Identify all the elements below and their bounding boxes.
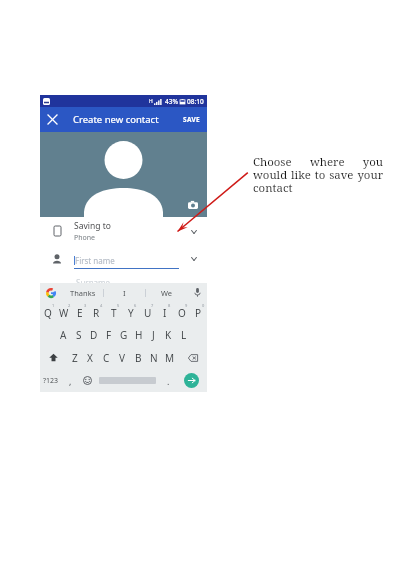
button[interactable]: W xyxy=(56,302,72,324)
button[interactable]: E xyxy=(72,302,88,324)
staticText: Choose where you would like to save your… xyxy=(253,154,383,196)
button[interactable]: Change photo xyxy=(188,200,198,209)
button[interactable]: A xyxy=(56,324,71,346)
button[interactable]: We xyxy=(146,283,187,302)
staticText: 7 xyxy=(151,303,154,308)
button[interactable]: , xyxy=(62,369,79,392)
staticText: G xyxy=(120,328,128,342)
button[interactable]: Voice input xyxy=(187,283,207,302)
staticText: R xyxy=(93,306,100,320)
button[interactable]: Saving to xyxy=(40,217,207,245)
staticText: We xyxy=(161,288,173,298)
button[interactable]: K xyxy=(161,324,176,346)
staticText: , xyxy=(69,375,72,387)
staticText: 43% xyxy=(165,97,178,106)
button[interactable]: Shift xyxy=(40,346,67,369)
button[interactable]: O xyxy=(173,302,190,324)
staticText: T xyxy=(111,306,117,320)
staticText: C xyxy=(103,351,110,365)
staticText: X xyxy=(87,351,93,365)
staticText: O xyxy=(178,306,186,320)
button[interactable]: Google search xyxy=(40,283,62,302)
button[interactable]: P xyxy=(190,302,207,324)
staticText: First name xyxy=(75,255,115,266)
staticText: D xyxy=(90,328,98,342)
staticText: Y xyxy=(128,306,134,320)
staticText: N xyxy=(150,351,158,365)
button[interactable]: M xyxy=(162,346,178,369)
staticText: 1 xyxy=(52,303,55,308)
staticText: L xyxy=(181,328,187,342)
staticText: 08:10 xyxy=(187,97,204,106)
staticText: Q xyxy=(44,306,52,320)
button[interactable]: S xyxy=(71,324,86,346)
staticText: 2 xyxy=(68,303,71,308)
staticText: H xyxy=(135,328,143,342)
staticText: Create new contact xyxy=(73,113,159,126)
button[interactable]: Emoji xyxy=(79,369,95,392)
staticText: . xyxy=(167,375,170,387)
button[interactable]: SAVE xyxy=(176,109,207,130)
staticText: S xyxy=(76,328,82,342)
button[interactable]: Expand name fields xyxy=(188,253,199,264)
staticText: W xyxy=(59,306,69,320)
staticText: U xyxy=(144,306,152,320)
button[interactable]: Y xyxy=(122,302,139,324)
button[interactable]: H xyxy=(131,324,146,346)
staticText: A xyxy=(60,328,67,342)
button[interactable]: I xyxy=(104,283,145,302)
button[interactable]: R xyxy=(88,302,105,324)
staticText: 8 xyxy=(168,303,171,308)
staticText: Saving to xyxy=(74,220,111,232)
button[interactable]: T xyxy=(105,302,122,324)
button[interactable]: J xyxy=(146,324,161,346)
button[interactable]: Space xyxy=(99,369,156,392)
button[interactable]: Q xyxy=(40,302,56,324)
staticText: SAVE xyxy=(183,115,200,124)
staticText: 4 xyxy=(100,303,103,308)
staticText: H xyxy=(149,98,153,105)
button[interactable]: Change account xyxy=(188,226,199,237)
staticText: 5 xyxy=(117,303,120,308)
button[interactable]: U xyxy=(139,302,156,324)
staticText: E xyxy=(77,306,83,320)
staticText: J xyxy=(152,328,155,342)
staticText: V xyxy=(119,351,125,365)
button[interactable]: D xyxy=(86,324,101,346)
staticText: Surname xyxy=(76,277,111,288)
button[interactable]: X xyxy=(82,346,98,369)
staticText: Phone xyxy=(74,233,96,243)
staticText: B xyxy=(135,351,142,365)
button[interactable]: Close xyxy=(40,107,65,132)
button[interactable]: Backspace xyxy=(178,346,207,369)
staticText: F xyxy=(106,328,112,342)
staticText: 6 xyxy=(134,303,137,308)
staticText: I xyxy=(163,306,167,320)
staticText: P xyxy=(195,306,202,320)
staticText: 3 xyxy=(84,303,87,308)
button[interactable]: ?123 xyxy=(40,369,62,392)
button[interactable]: Thanks xyxy=(62,283,103,302)
staticText: 0 xyxy=(202,303,205,308)
button[interactable]: G xyxy=(116,324,131,346)
button[interactable]: . xyxy=(160,369,176,392)
button[interactable]: F xyxy=(101,324,116,346)
button[interactable]: I xyxy=(156,302,173,324)
staticText: Z xyxy=(72,351,78,365)
button[interactable]: B xyxy=(130,346,146,369)
staticText: I xyxy=(123,288,126,298)
staticText: 9 xyxy=(185,303,188,308)
button[interactable]: N xyxy=(146,346,162,369)
button[interactable]: V xyxy=(114,346,130,369)
button[interactable]: Enter xyxy=(176,369,207,392)
staticText: Thanks xyxy=(70,288,96,298)
button[interactable]: L xyxy=(176,324,191,346)
button[interactable]: C xyxy=(98,346,114,369)
staticText: M xyxy=(165,351,175,365)
button[interactable]: Z xyxy=(67,346,82,369)
staticText: ?123 xyxy=(43,376,59,386)
staticText: K xyxy=(165,328,172,342)
